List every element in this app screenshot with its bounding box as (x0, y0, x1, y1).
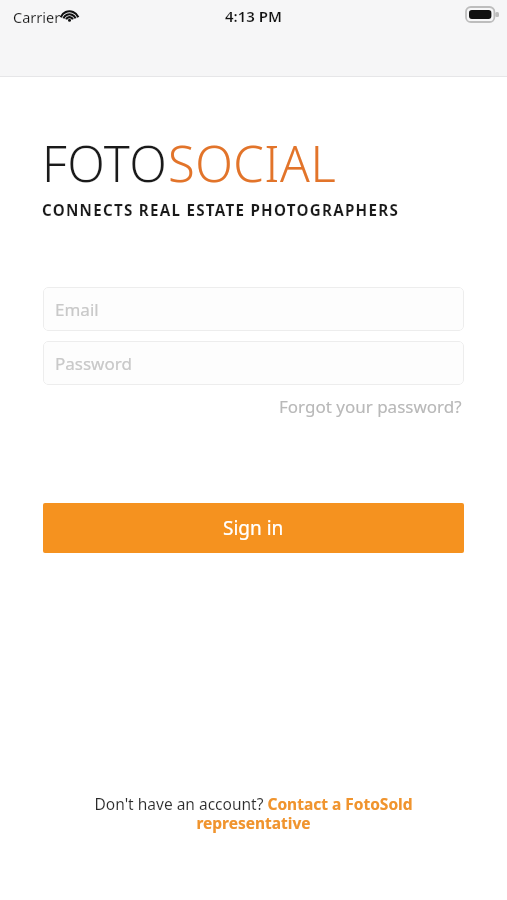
staticText: CONNECTS REAL ESTATE PHOTOGRAPHERS (42, 200, 400, 221)
staticText: FOTO (42, 130, 168, 197)
button[interactable]: Email (43, 287, 464, 331)
other: Wi-Fi signal (60, 7, 79, 22)
staticText: Carrier (13, 7, 61, 27)
staticText: Sign in (223, 515, 284, 541)
staticText: Forgot your password? (279, 395, 462, 418)
button[interactable]: Password (43, 341, 464, 385)
staticText: Don't have an account? Contact a FotoSol… (40, 793, 467, 833)
staticText: SOCIAL (168, 130, 337, 197)
staticText: Password (55, 352, 132, 375)
staticText: Email (55, 298, 99, 321)
staticText: 4:13 PM (225, 6, 282, 26)
other: Battery full (466, 7, 499, 22)
button[interactable]: Sign in (43, 503, 464, 553)
button[interactable]: Don't have an account? Contact a FotoSol… (40, 793, 467, 833)
button[interactable]: Forgot your password? (277, 391, 464, 422)
